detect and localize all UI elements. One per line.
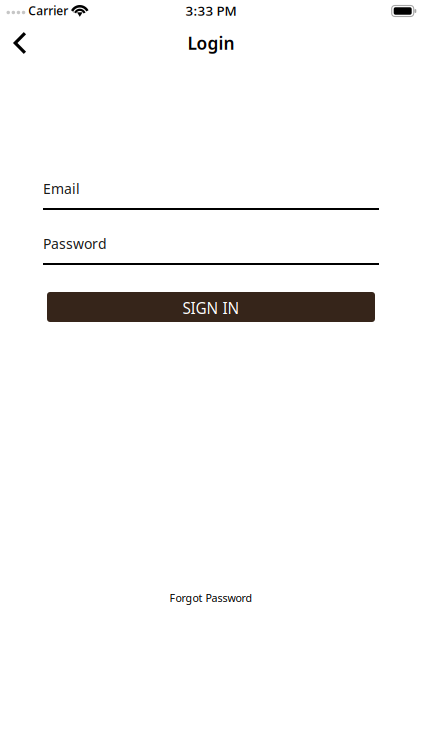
staticText: Email [43,179,80,198]
staticText: 3:33 PM [185,1,236,20]
button[interactable]: Back [0,22,40,64]
staticText: Password [43,234,107,253]
staticText: SIGN IN [182,298,239,318]
staticText: Carrier [28,2,68,19]
button[interactable]: Forgot Password [159,585,262,610]
staticText: Forgot Password [169,590,252,605]
button[interactable]: SIGN IN [47,292,375,322]
staticText: Login [187,31,234,55]
